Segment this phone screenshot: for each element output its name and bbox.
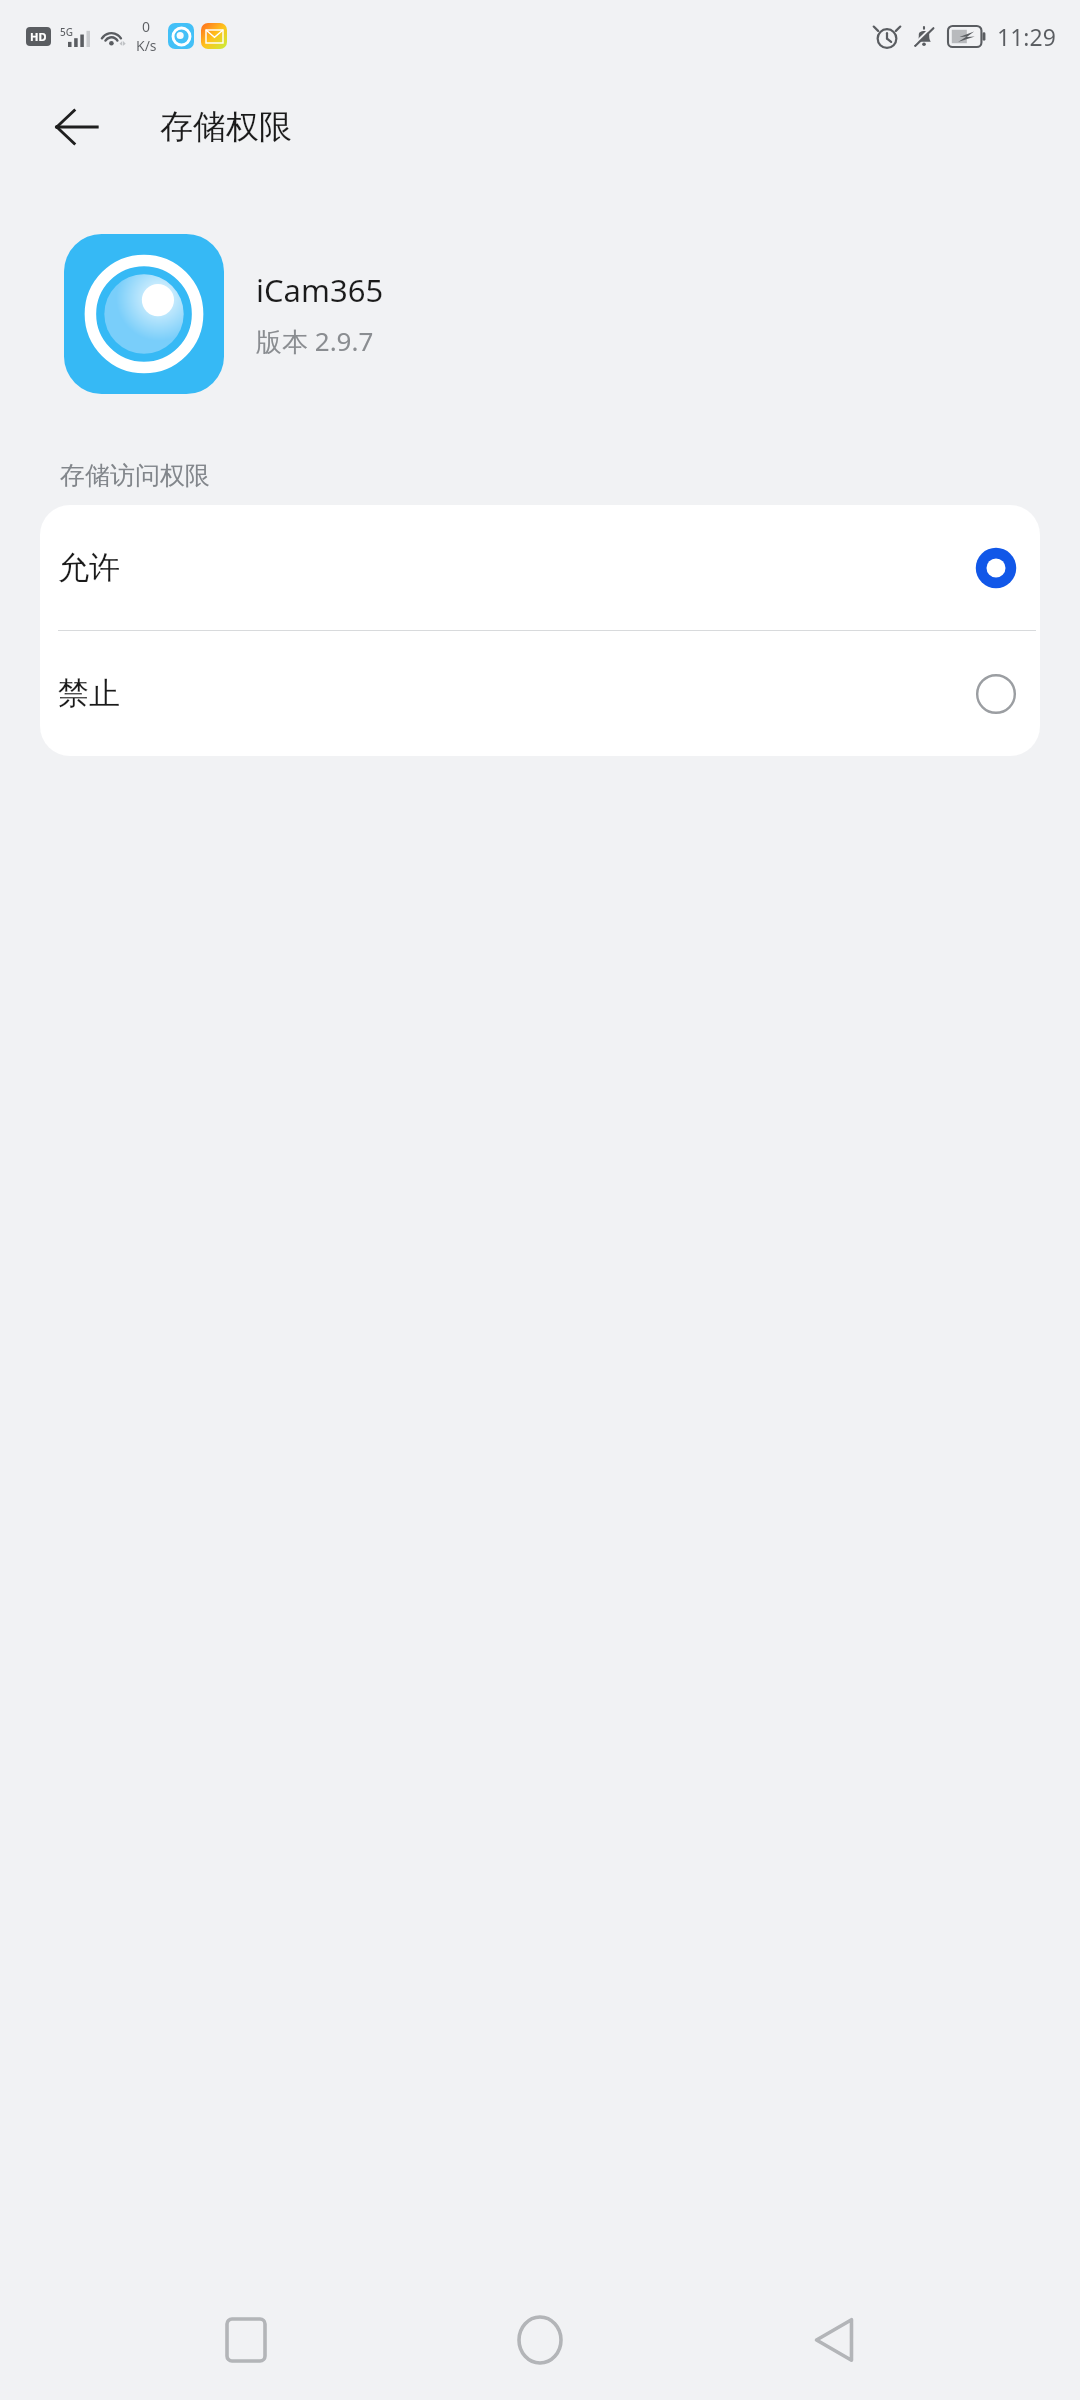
staticText: 5G <box>60 25 73 39</box>
staticText: 允许 <box>58 548 120 587</box>
button[interactable]: 禁止 <box>40 631 1040 756</box>
button[interactable]: Home <box>492 2292 588 2388</box>
button[interactable]: Back <box>786 2292 882 2388</box>
staticText: HD <box>30 29 47 44</box>
button[interactable]: 允许 <box>40 505 1040 630</box>
staticText: 0 <box>142 17 151 36</box>
staticText: 版本 2.9.7 <box>256 323 374 359</box>
staticText: 存储权限 <box>160 106 292 148</box>
staticText: 禁止 <box>58 674 120 713</box>
staticText: 存储访问权限 <box>60 460 210 491</box>
staticText: 11:29 <box>997 21 1056 52</box>
button[interactable]: Back <box>42 92 112 162</box>
staticText: iCam365 <box>256 269 384 311</box>
button[interactable]: Recent apps <box>198 2292 294 2388</box>
staticText: K/s <box>136 36 157 55</box>
